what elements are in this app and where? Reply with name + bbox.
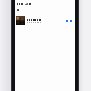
button[interactable]: Menu (17, 9, 19, 11)
button[interactable]: More options (15, 14, 75, 27)
button[interactable]: More options (65, 20, 73, 22)
